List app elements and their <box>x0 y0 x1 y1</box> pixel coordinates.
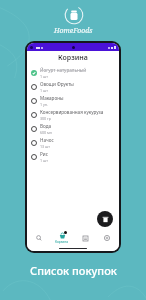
button[interactable]: Списки <box>75 231 95 245</box>
staticText: Корзина <box>58 53 88 63</box>
staticText: 300 гр <box>40 116 51 121</box>
button[interactable]: Очистить корзину <box>97 211 113 227</box>
staticText: Корзина <box>55 240 69 244</box>
button[interactable]: Овощи Фрукты <box>27 80 119 94</box>
staticText: HomeFoods <box>54 26 93 36</box>
button[interactable]: Рис <box>27 150 119 164</box>
staticText: 1 уп. <box>40 102 48 107</box>
button[interactable]: Поиск <box>29 231 49 245</box>
button[interactable]: Йогурт натуральный <box>27 66 119 80</box>
staticText: Вода <box>40 123 52 129</box>
button[interactable]: Макароны <box>27 94 119 108</box>
button[interactable]: Вода <box>27 122 119 136</box>
staticText: 1 шт <box>40 158 48 163</box>
staticText: 600 мл <box>40 130 52 135</box>
staticText: Список покупок <box>30 263 117 278</box>
staticText: Макароны <box>40 95 64 101</box>
staticText: Рис <box>40 151 48 157</box>
staticText: Овощи Фрукты <box>40 81 74 87</box>
staticText: Консервированная кукуруза <box>40 109 104 115</box>
staticText: Начос <box>40 137 54 143</box>
button[interactable]: Настройки <box>97 231 117 245</box>
button[interactable]: Корзина <box>51 231 73 245</box>
button[interactable]: Начос <box>27 136 119 150</box>
staticText: 1 шт <box>40 88 48 93</box>
staticText: 13 шт <box>40 144 50 149</box>
staticText: Йогурт натуральный <box>40 67 87 73</box>
staticText: 1 шт <box>40 74 48 79</box>
button[interactable]: Консервированная кукуруза <box>27 108 119 122</box>
